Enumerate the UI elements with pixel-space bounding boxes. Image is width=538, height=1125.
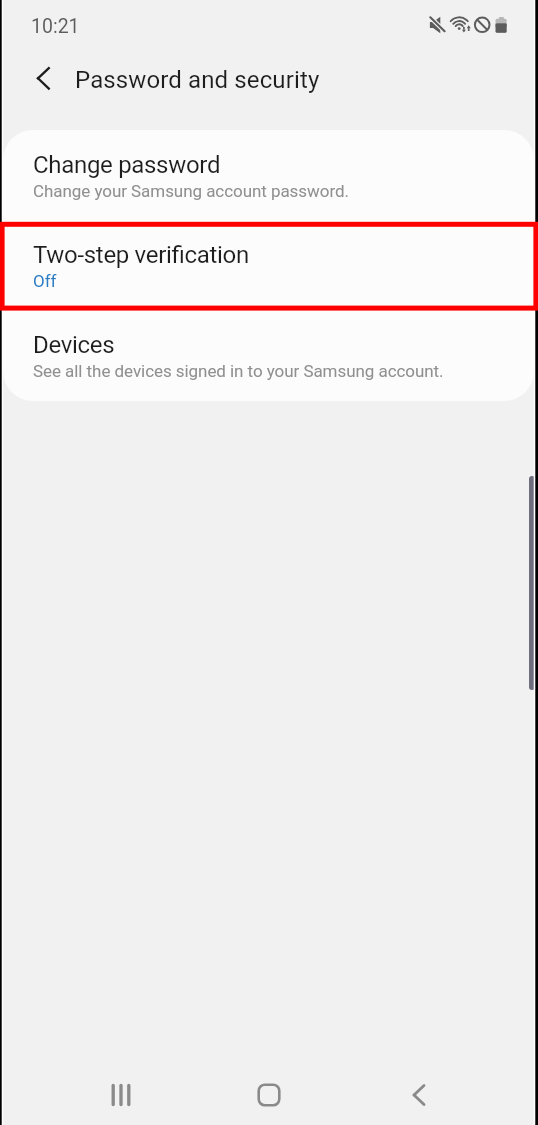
button[interactable]: Devices bbox=[3, 310, 534, 400]
button[interactable]: Home bbox=[241, 1067, 297, 1123]
button[interactable]: Two-step verification bbox=[3, 220, 534, 310]
staticText: Devices bbox=[33, 331, 115, 359]
staticText: Change password bbox=[33, 151, 221, 179]
button[interactable]: Recent apps bbox=[93, 1067, 149, 1123]
staticText: 10:21 bbox=[31, 15, 80, 38]
button[interactable]: Change password bbox=[3, 130, 534, 220]
staticText: Two-step verification bbox=[33, 241, 249, 269]
staticText: See all the devices signed in to your Sa… bbox=[33, 361, 444, 381]
button[interactable]: Back bbox=[391, 1067, 447, 1123]
staticText: Change your Samsung account password. bbox=[33, 181, 349, 201]
staticText: Off bbox=[33, 271, 57, 291]
staticText: Password and security bbox=[75, 66, 320, 94]
button[interactable]: Navigate up bbox=[18, 54, 66, 102]
